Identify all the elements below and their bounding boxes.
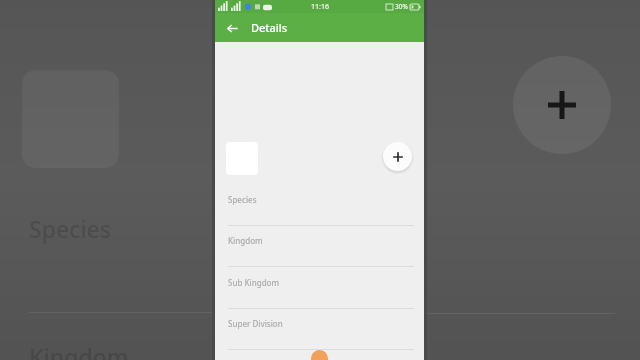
button[interactable]: Super Division <box>215 314 424 355</box>
button[interactable]: Back <box>221 17 243 39</box>
staticText: Super Division <box>228 318 283 329</box>
staticText: 30% <box>395 2 408 11</box>
staticText: Kingdom <box>228 235 263 246</box>
button[interactable]: Sub Kingdom <box>215 273 424 314</box>
staticText: 11:16 <box>311 2 329 12</box>
staticText: Kingdom <box>29 341 129 360</box>
button[interactable]: Kingdom <box>215 231 424 272</box>
staticText: Species <box>29 213 111 244</box>
button[interactable]: Species <box>215 190 424 231</box>
staticText: Details <box>251 20 288 35</box>
staticText: Species <box>228 194 257 205</box>
staticText: Sub Kingdom <box>228 277 280 288</box>
button[interactable]: Add <box>383 142 412 171</box>
